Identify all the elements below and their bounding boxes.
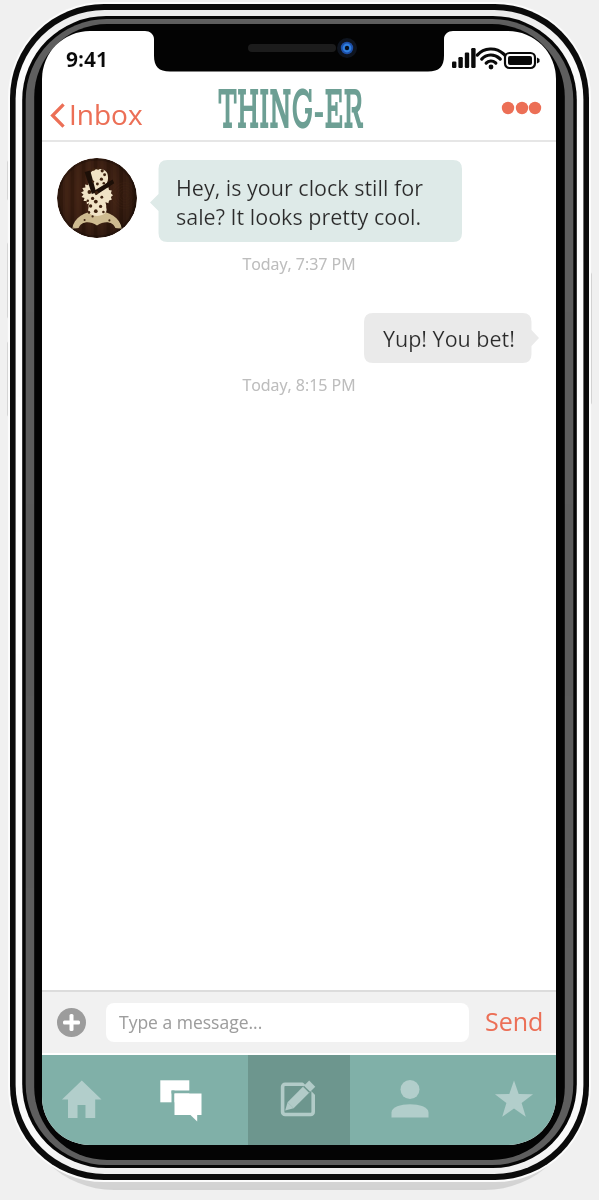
staticText: THING-ER	[218, 75, 364, 149]
staticText: Today, 8:15 PM	[42, 374, 556, 396]
button[interactable]: Yup! You bet!	[364, 313, 539, 363]
staticText: sale? It looks pretty cool.	[176, 202, 422, 231]
button[interactable]: More options	[494, 93, 550, 137]
button[interactable]: Inbox	[42, 90, 157, 140]
button[interactable]: Hey, is your clock still for	[150, 160, 462, 242]
button[interactable]: Add attachment	[57, 1008, 86, 1037]
staticText: 9:41	[66, 45, 109, 74]
button[interactable]: Contact avatar	[57, 158, 137, 238]
button[interactable]: Profile	[350, 1055, 453, 1145]
button[interactable]: Send	[475, 990, 554, 1053]
button[interactable]: Type a message...	[106, 1003, 469, 1042]
staticText: Today, 7:37 PM	[42, 253, 556, 275]
button[interactable]: Favourites	[453, 1055, 556, 1145]
staticText: Type a message...	[119, 1010, 263, 1034]
staticText: Inbox	[69, 95, 143, 133]
button[interactable]: Compose	[248, 1055, 351, 1145]
staticText: Yup! You bet!	[383, 324, 515, 353]
button[interactable]: Messages	[145, 1055, 248, 1145]
staticText: Send	[485, 1004, 544, 1038]
button[interactable]: Home	[42, 1055, 145, 1145]
staticText: Hey, is your clock still for	[176, 173, 423, 202]
